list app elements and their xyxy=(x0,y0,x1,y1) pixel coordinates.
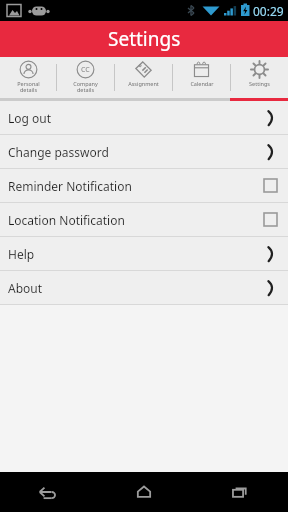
button[interactable]: Company details xyxy=(57,57,114,98)
staticText: CC xyxy=(81,65,90,75)
button[interactable]: Back xyxy=(0,472,96,512)
button[interactable]: Calendar xyxy=(173,57,230,98)
button[interactable]: Home xyxy=(96,472,192,512)
button[interactable]: Location Notification xyxy=(0,203,288,236)
staticText: Help xyxy=(8,246,35,262)
staticText: Location Notification xyxy=(8,212,125,228)
button[interactable]: Assignment xyxy=(115,57,172,98)
button[interactable]: Log out xyxy=(0,101,288,134)
button[interactable]: Help xyxy=(0,237,288,270)
button[interactable]: Settings xyxy=(231,57,288,98)
button[interactable]: Personal details xyxy=(0,57,56,98)
button[interactable]: Change password xyxy=(0,135,288,168)
staticText: Settings xyxy=(108,26,181,52)
button[interactable]: Recents xyxy=(192,472,288,512)
staticText: Log out xyxy=(8,110,52,126)
button[interactable]: Reminder Notification xyxy=(0,169,288,202)
staticText: 00:29 xyxy=(253,3,284,19)
staticText: Settings xyxy=(249,80,270,87)
staticText: Personal details xyxy=(17,80,40,94)
staticText: Reminder Notification xyxy=(8,178,132,194)
button[interactable]: About xyxy=(0,271,288,304)
staticText: About xyxy=(8,280,43,296)
staticText: Company details xyxy=(73,80,98,94)
staticText: Assignment xyxy=(128,80,159,87)
staticText: Change password xyxy=(8,144,109,160)
staticText: Calendar xyxy=(190,80,214,87)
